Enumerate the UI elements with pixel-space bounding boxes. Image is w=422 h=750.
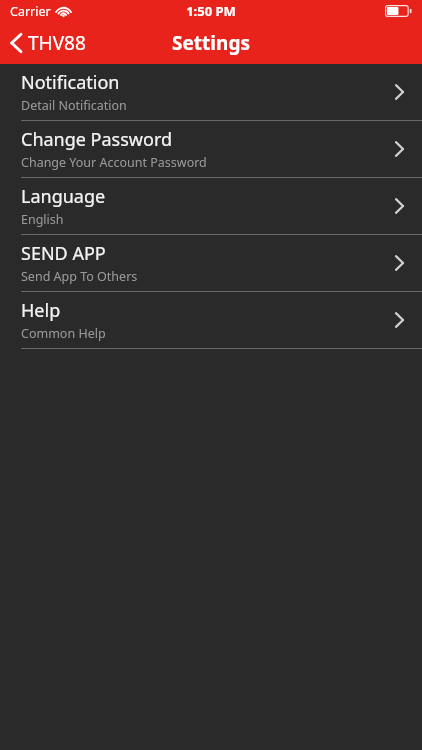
staticText: 1:50 PM [186, 2, 236, 20]
button[interactable]: SEND APP [0, 235, 422, 292]
other: Open Language [394, 197, 405, 215]
staticText: Help [21, 298, 61, 323]
staticText: Settings [172, 30, 250, 56]
button[interactable]: Change Password [0, 121, 422, 178]
staticText: SEND APP [21, 241, 106, 266]
staticText: Change Your Account Password [21, 154, 207, 171]
other: Open Change Password [394, 140, 405, 158]
staticText: Send App To Others [21, 268, 138, 285]
staticText: Common Help [21, 325, 106, 342]
button[interactable]: Notification [0, 64, 422, 121]
button[interactable]: THV88 [0, 22, 135, 64]
button[interactable]: Help [0, 292, 422, 349]
staticText: Change Password [21, 127, 173, 152]
staticText: Notification [21, 70, 120, 95]
other: Open Notification [394, 83, 405, 101]
staticText: English [21, 211, 64, 228]
staticText: Detail Notification [21, 97, 127, 114]
staticText: Language [21, 184, 106, 209]
button[interactable]: Language [0, 178, 422, 235]
staticText: THV88 [28, 30, 86, 56]
other: Open Help [394, 311, 405, 329]
staticText: Carrier [10, 3, 51, 20]
other: Open SEND APP [394, 254, 405, 272]
